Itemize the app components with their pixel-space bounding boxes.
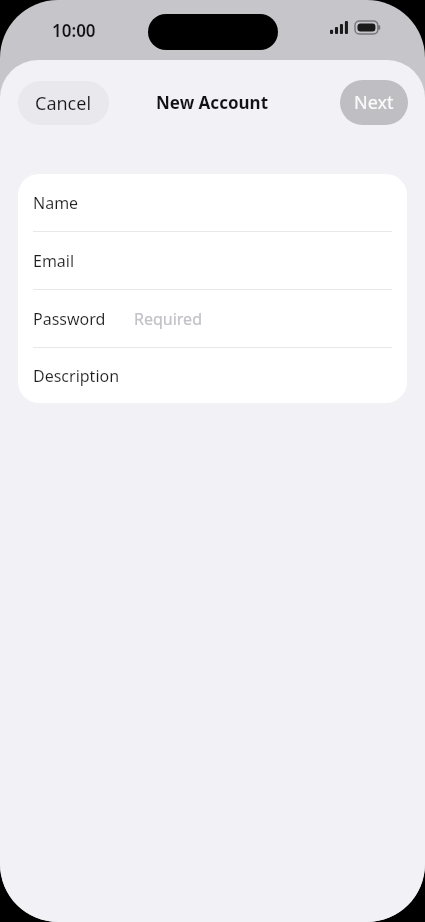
- staticText: Password: [33, 308, 106, 330]
- button[interactable]: Cancel: [18, 81, 109, 125]
- button[interactable]: Password: [18, 290, 407, 348]
- button[interactable]: Description: [18, 348, 407, 403]
- button[interactable]: Next: [340, 80, 408, 125]
- staticText: Description: [33, 365, 120, 387]
- staticText: Required: [134, 308, 202, 330]
- staticText: Cancel: [35, 91, 92, 116]
- staticText: 10:00: [52, 19, 96, 42]
- button[interactable]: Name: [18, 174, 407, 232]
- staticText: Next: [354, 90, 394, 115]
- staticText: Name: [33, 192, 79, 214]
- staticText: Email: [33, 250, 75, 272]
- button[interactable]: Email: [18, 232, 407, 290]
- staticText: New Account: [156, 91, 269, 114]
